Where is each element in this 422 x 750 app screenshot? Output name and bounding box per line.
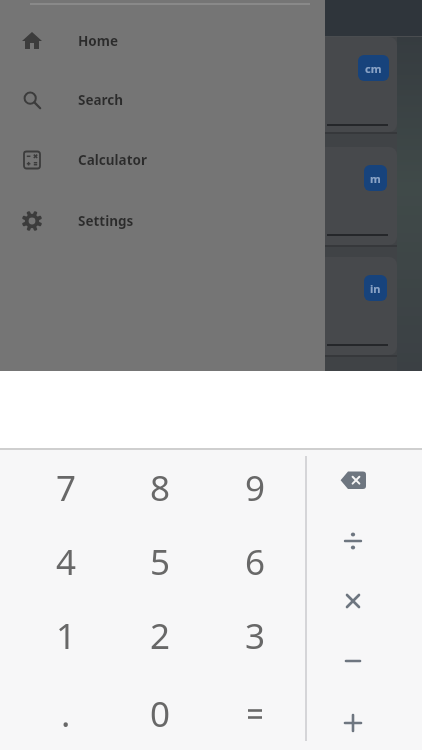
button[interactable]: 2	[116, 601, 204, 671]
staticText: 9	[245, 464, 266, 512]
staticText: 5	[150, 538, 171, 586]
button[interactable]: Settings	[0, 197, 325, 245]
button[interactable]: 8	[116, 453, 204, 523]
staticText: 3	[245, 612, 266, 660]
button[interactable]: 9	[211, 453, 299, 523]
button[interactable]: .	[22, 679, 110, 749]
button[interactable]: Calculator	[0, 136, 325, 184]
button[interactable]	[313, 695, 393, 750]
button[interactable]: 5	[116, 527, 204, 597]
button[interactable]	[313, 633, 393, 689]
staticText: 4	[56, 538, 77, 586]
button[interactable]: in	[364, 275, 387, 301]
button[interactable]: 7	[22, 453, 110, 523]
button[interactable]: m	[364, 165, 387, 191]
staticText: Settings	[78, 212, 134, 230]
button[interactable]: 3	[211, 601, 299, 671]
staticText: 0	[150, 690, 171, 738]
staticText: 2	[150, 612, 171, 660]
button[interactable]: 1	[22, 601, 110, 671]
button[interactable]	[313, 513, 393, 569]
staticText: .	[61, 690, 71, 738]
button[interactable]: 4	[22, 527, 110, 597]
staticText: 8	[150, 464, 171, 512]
button[interactable]	[313, 453, 393, 509]
button[interactable]: cm	[358, 55, 389, 81]
staticText: Home	[78, 32, 118, 50]
button[interactable]	[211, 679, 299, 749]
staticText: cm	[365, 61, 382, 76]
button[interactable]: 0	[116, 679, 204, 749]
staticText: Calculator	[78, 151, 147, 169]
button[interactable]: 6	[211, 527, 299, 597]
staticText: 1	[56, 612, 77, 660]
staticText: 7	[56, 464, 77, 512]
staticText: 6	[245, 538, 266, 586]
staticText: in	[370, 281, 381, 296]
staticText: m	[370, 171, 381, 186]
button[interactable]: Home	[0, 17, 325, 65]
button[interactable]	[313, 573, 393, 629]
staticText: Search	[78, 91, 124, 109]
button[interactable]: Search	[0, 76, 325, 124]
